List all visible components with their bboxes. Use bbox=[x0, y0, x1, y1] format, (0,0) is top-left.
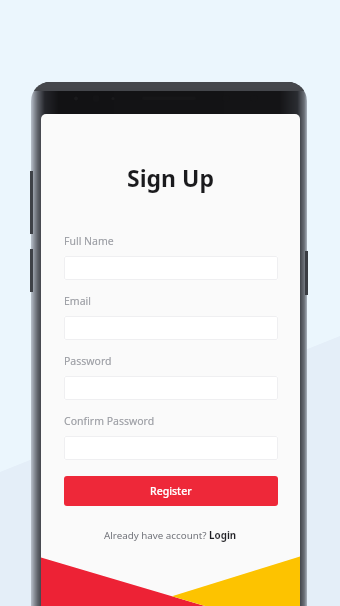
staticText: Email bbox=[64, 294, 91, 308]
button[interactable]: Register bbox=[64, 476, 278, 506]
staticText: Password bbox=[64, 354, 112, 368]
button[interactable] bbox=[64, 376, 278, 400]
staticText: Full Name bbox=[64, 234, 114, 248]
staticText: Sign Up bbox=[41, 162, 300, 193]
button[interactable] bbox=[64, 256, 278, 280]
button[interactable] bbox=[64, 316, 278, 340]
staticText: Register bbox=[150, 484, 192, 498]
staticText: Confirm Password bbox=[64, 414, 155, 428]
button[interactable]: Already have account? Login bbox=[104, 529, 237, 542]
button[interactable] bbox=[64, 436, 278, 460]
